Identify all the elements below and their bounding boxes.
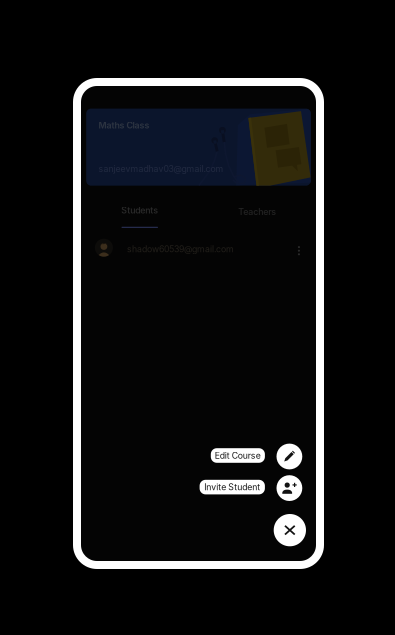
button[interactable]: Close menu bbox=[274, 514, 306, 546]
button[interactable]: Edit Course bbox=[276, 444, 302, 469]
button[interactable]: Students bbox=[81, 186, 198, 235]
staticText: Teachers bbox=[238, 206, 276, 217]
staticText: Students bbox=[121, 205, 158, 216]
button[interactable]: Edit Course bbox=[211, 449, 265, 464]
staticText: shadow60539@gmail.com bbox=[127, 244, 234, 254]
button[interactable]: Invite Student bbox=[276, 475, 302, 501]
staticText: Invite Student bbox=[204, 482, 260, 492]
staticText: Maths Class bbox=[98, 120, 149, 131]
button[interactable]: Invite Student bbox=[200, 481, 265, 495]
staticText: sanjeevmadhav03@gmail.com bbox=[98, 164, 223, 174]
staticText: Edit Course bbox=[215, 450, 261, 461]
button[interactable]: shadow60539@gmail.com bbox=[81, 235, 316, 261]
